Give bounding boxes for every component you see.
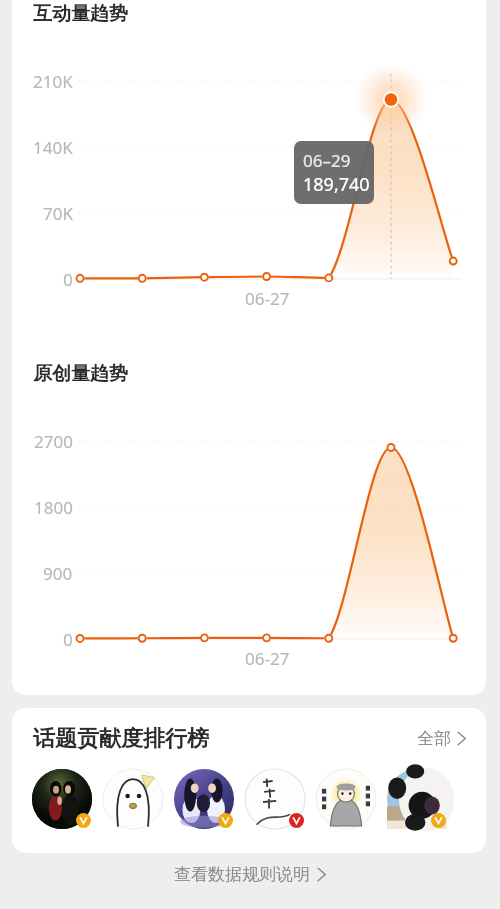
button[interactable]: 用户头像 [103,769,163,829]
staticText: 189,740 [303,172,370,197]
staticText: 140K [33,136,73,159]
staticText: 0 [63,628,73,651]
staticText: 210K [33,70,73,93]
staticText: 0 [63,268,73,291]
staticText: 06–29 [303,149,351,172]
staticText: 全部 [417,728,451,749]
staticText: 查看数据规则说明 [174,864,310,885]
button[interactable]: 用户头像 [316,769,376,829]
staticText: 原创量趋势 [33,362,128,386]
staticText: 2700 [34,430,73,453]
button[interactable]: 用户头像 [174,769,234,829]
staticText: 话题贡献度排行榜 [33,725,209,753]
button[interactable]: 用户头像 [32,769,92,829]
button[interactable]: 全部 [413,722,470,755]
button[interactable]: 查看数据规则说明 [0,864,500,885]
button[interactable]: 用户头像 [245,769,305,829]
staticText: 互动量趋势 [33,2,128,26]
staticText: 06-27 [245,287,290,310]
button[interactable]: 用户头像 [387,769,447,829]
staticText: 70K [43,202,73,225]
staticText: 900 [43,562,73,585]
staticText: 06-27 [245,647,290,670]
staticText: 1800 [34,496,73,519]
